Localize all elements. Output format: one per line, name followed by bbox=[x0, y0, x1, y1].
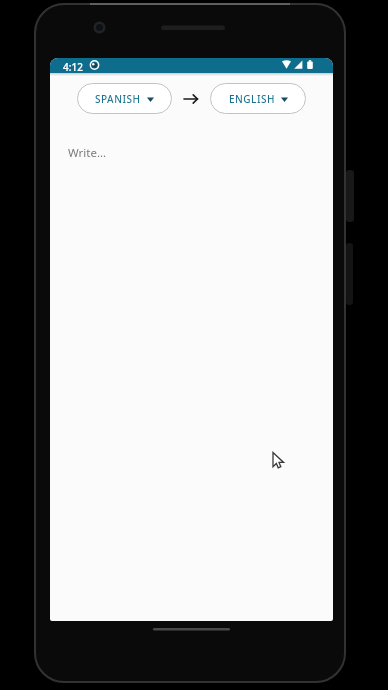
staticText: 4:12 bbox=[63, 60, 83, 74]
button[interactable]: ENGLISH bbox=[210, 83, 306, 114]
staticText: SPANISH bbox=[95, 92, 141, 106]
button[interactable]: SPANISH bbox=[77, 83, 172, 114]
staticText: ENGLISH bbox=[229, 92, 275, 106]
staticText: Write... bbox=[68, 145, 107, 161]
